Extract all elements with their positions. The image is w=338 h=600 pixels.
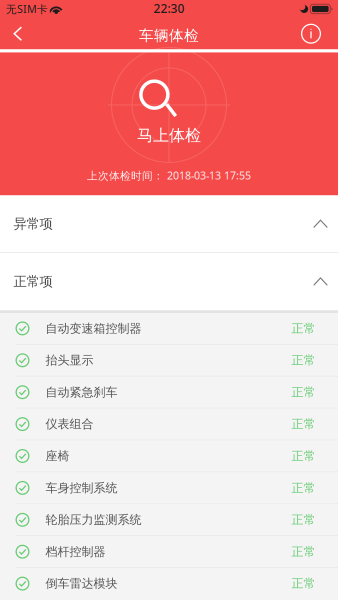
button[interactable]: 正常项 xyxy=(0,253,338,311)
staticText: 轮胎压力监测系统 xyxy=(45,512,141,527)
staticText: 正常 xyxy=(291,512,315,527)
staticText: 异常项 xyxy=(13,215,52,232)
staticText: 正常项 xyxy=(13,273,52,290)
staticText: 车辆体检 xyxy=(139,27,199,45)
staticText: 仪表组合 xyxy=(45,417,93,431)
staticText: 正常 xyxy=(291,480,315,495)
button[interactable]: 车身控制系统 xyxy=(0,472,338,504)
staticText: 正常 xyxy=(291,353,315,368)
staticText: 无SIM卡 xyxy=(6,2,48,16)
staticText: 座椅 xyxy=(45,449,69,463)
staticText: 抬头显示 xyxy=(45,353,93,368)
staticText: 正常 xyxy=(291,385,315,399)
button[interactable]: 档杆控制器 xyxy=(0,536,338,568)
staticText: 档杆控制器 xyxy=(45,544,105,559)
staticText: 马上体检 xyxy=(137,126,201,145)
button[interactable]: 异常项 xyxy=(0,195,338,253)
button[interactable]: 自动紧急刹车 xyxy=(0,377,338,409)
button[interactable]: Information xyxy=(295,18,327,49)
button[interactable]: 抬头显示 xyxy=(0,345,338,377)
staticText: 自动变速箱控制器 xyxy=(45,321,141,336)
staticText: 自动紧急刹车 xyxy=(45,385,117,399)
staticText: 上次体检时间： 2018-03-13 17:55 xyxy=(87,168,251,183)
staticText: 正常 xyxy=(291,417,315,431)
button[interactable]: 自动变速箱控制器 xyxy=(0,313,338,345)
staticText: 车身控制系统 xyxy=(45,480,117,495)
button[interactable]: 倒车雷达模块 xyxy=(0,568,338,600)
staticText: 倒车雷达模块 xyxy=(45,576,117,591)
button[interactable]: 仪表组合 xyxy=(0,409,338,441)
staticText: 正常 xyxy=(291,544,315,559)
button[interactable]: 座椅 xyxy=(0,441,338,472)
staticText: 正常 xyxy=(291,449,315,463)
button[interactable]: Back xyxy=(3,18,33,49)
staticText: 正常 xyxy=(291,576,315,591)
staticText: 22:30 xyxy=(153,0,184,16)
button[interactable]: 轮胎压力监测系统 xyxy=(0,504,338,536)
staticText: 正常 xyxy=(291,321,315,336)
button[interactable]: 马上体检 xyxy=(104,53,234,157)
